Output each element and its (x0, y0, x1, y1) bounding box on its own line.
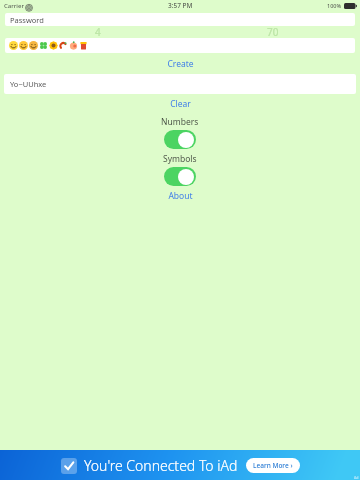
staticText: Learn More › (253, 461, 293, 470)
staticText: Numbers (161, 116, 199, 128)
staticText: 70 (267, 25, 279, 37)
staticText: 4 (95, 25, 101, 37)
staticText: Symbols (163, 153, 197, 165)
button[interactable]: Clear (0, 97, 360, 110)
staticText: 100% (327, 2, 342, 9)
staticText: About (168, 190, 193, 202)
staticText: Ad (354, 475, 359, 480)
button[interactable]: Create (0, 57, 360, 70)
button[interactable]: About (0, 189, 360, 202)
staticText: Yo~UUhxe (10, 79, 47, 89)
staticText: Create (167, 58, 194, 70)
staticText: Password (10, 15, 44, 25)
staticText: Clear (170, 98, 191, 110)
button[interactable]: Password (5, 13, 355, 26)
button[interactable]: Toggle on (164, 167, 196, 186)
staticText: You're Connected To iAd (84, 456, 238, 475)
button[interactable] (5, 38, 355, 53)
button[interactable]: You're Connected To iAd (0, 450, 360, 480)
button[interactable]: Yo~UUhxe (4, 74, 356, 94)
button[interactable]: Toggle on (164, 130, 196, 149)
button[interactable]: Learn More › (253, 461, 293, 470)
staticText: 3:57 PM (168, 1, 193, 10)
staticText: Carrier (4, 2, 24, 10)
